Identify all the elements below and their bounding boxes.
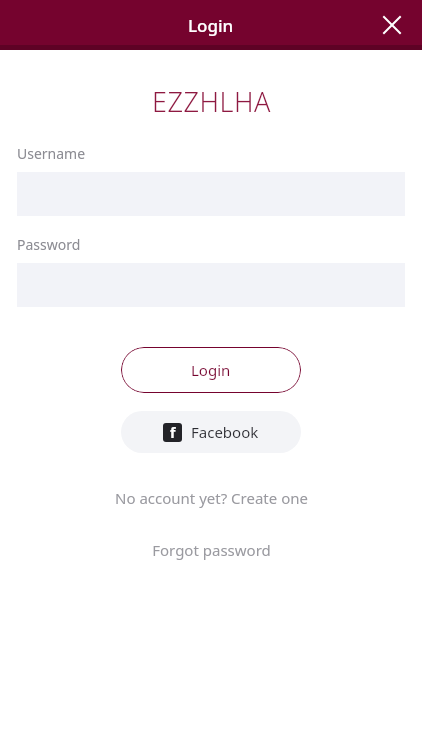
staticText: Login (188, 14, 234, 37)
staticText: EZZHLHA (152, 83, 271, 120)
button[interactable]: f (121, 411, 301, 453)
staticText: Password (17, 235, 81, 254)
button[interactable]: Forgot password (0, 540, 422, 560)
staticText: Forgot password (152, 540, 271, 560)
staticText: No account yet? Create one (115, 488, 308, 508)
staticText: f (170, 423, 176, 442)
staticText: Username (17, 144, 86, 163)
staticText: Facebook (191, 422, 259, 442)
staticText: Login (191, 360, 231, 380)
button[interactable]: No account yet? Create one (0, 488, 422, 508)
button[interactable]: Login (121, 347, 301, 393)
button[interactable]: Close (370, 3, 414, 47)
